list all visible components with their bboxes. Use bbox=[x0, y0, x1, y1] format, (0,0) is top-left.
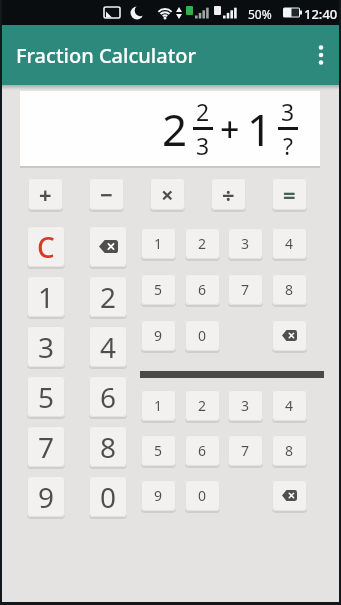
staticText: × bbox=[161, 179, 174, 209]
button[interactable]: 4 bbox=[272, 228, 307, 259]
staticText: 7 bbox=[38, 428, 55, 466]
staticText: = bbox=[283, 179, 296, 209]
button[interactable]: 8 bbox=[89, 426, 127, 467]
staticText: + bbox=[39, 179, 52, 209]
staticText: 5 bbox=[38, 378, 55, 416]
button[interactable]: 0 bbox=[89, 476, 127, 517]
staticText: Fraction Calculator bbox=[16, 42, 196, 69]
button[interactable]: 3 bbox=[228, 390, 263, 421]
button[interactable]: + bbox=[28, 178, 63, 210]
button[interactable]: 5 bbox=[141, 435, 176, 466]
button[interactable]: 9 bbox=[141, 480, 176, 511]
staticText: 4 bbox=[285, 396, 294, 415]
staticText: 5 bbox=[154, 280, 163, 299]
button[interactable]: 6 bbox=[185, 274, 220, 305]
button[interactable]: 9 bbox=[27, 476, 65, 517]
staticText: + bbox=[220, 106, 240, 152]
staticText: 8 bbox=[100, 428, 117, 466]
staticText: 5 bbox=[154, 441, 163, 460]
staticText: 3 bbox=[196, 130, 210, 161]
staticText: 6 bbox=[100, 378, 117, 416]
button[interactable] bbox=[89, 226, 127, 267]
button[interactable]: 3 bbox=[228, 228, 263, 259]
staticText: 3 bbox=[241, 234, 250, 253]
staticText: 7 bbox=[241, 441, 250, 460]
button[interactable]: ÷ bbox=[211, 178, 246, 210]
button[interactable]: 1 bbox=[141, 228, 176, 259]
staticText: 1 bbox=[38, 278, 55, 316]
button[interactable]: 5 bbox=[141, 274, 176, 305]
staticText: − bbox=[100, 179, 113, 209]
staticText: 12:40 bbox=[304, 5, 338, 23]
staticText: 4 bbox=[100, 328, 117, 366]
button[interactable]: 7 bbox=[228, 274, 263, 305]
staticText: 6 bbox=[198, 441, 207, 460]
button[interactable]: 2 bbox=[185, 228, 220, 259]
staticText: 8 bbox=[285, 441, 294, 460]
button[interactable]: 0 bbox=[185, 480, 220, 511]
button[interactable]: − bbox=[89, 178, 124, 210]
staticText: 1 bbox=[154, 396, 163, 415]
button[interactable]: 9 bbox=[141, 320, 176, 351]
button[interactable]: 6 bbox=[185, 435, 220, 466]
staticText: 0 bbox=[198, 486, 207, 505]
button[interactable]: 7 bbox=[228, 435, 263, 466]
staticText: 3 bbox=[38, 328, 55, 366]
staticText: 50% bbox=[248, 6, 272, 22]
button[interactable]: 3 bbox=[27, 326, 65, 367]
button[interactable]: × bbox=[150, 178, 185, 210]
staticText: C bbox=[37, 228, 55, 266]
button[interactable]: 1 bbox=[141, 390, 176, 421]
button[interactable]: 2 bbox=[185, 390, 220, 421]
staticText: 8 bbox=[285, 280, 294, 299]
button[interactable] bbox=[272, 480, 307, 511]
staticText: 2 bbox=[196, 96, 210, 127]
button[interactable] bbox=[301, 31, 341, 79]
staticText: 4 bbox=[285, 234, 294, 253]
staticText: 9 bbox=[38, 478, 55, 516]
button[interactable]: 8 bbox=[272, 274, 307, 305]
button[interactable]: 4 bbox=[89, 326, 127, 367]
staticText: 2 bbox=[198, 234, 207, 253]
staticText: 6 bbox=[198, 280, 207, 299]
staticText: ÷ bbox=[222, 179, 235, 209]
button[interactable] bbox=[272, 320, 307, 351]
staticText: 1 bbox=[154, 234, 163, 253]
staticText: 9 bbox=[154, 486, 163, 505]
button[interactable]: 2 bbox=[89, 276, 127, 317]
button[interactable]: 1 bbox=[27, 276, 65, 317]
button[interactable]: 7 bbox=[27, 426, 65, 467]
staticText: 0 bbox=[198, 326, 207, 345]
button[interactable]: 4 bbox=[272, 390, 307, 421]
button[interactable]: = bbox=[272, 178, 307, 210]
staticText: 3 bbox=[241, 396, 250, 415]
staticText: 1 bbox=[247, 99, 273, 159]
staticText: ? bbox=[283, 130, 293, 161]
staticText: 2 bbox=[100, 278, 117, 316]
staticText: 2 bbox=[198, 396, 207, 415]
staticText: 0 bbox=[100, 478, 117, 516]
staticText: 3 bbox=[281, 96, 295, 127]
button[interactable]: 5 bbox=[27, 376, 65, 417]
button[interactable]: C bbox=[27, 226, 65, 267]
button[interactable]: 8 bbox=[272, 435, 307, 466]
button[interactable]: 0 bbox=[185, 320, 220, 351]
staticText: 7 bbox=[241, 280, 250, 299]
button[interactable]: 6 bbox=[89, 376, 127, 417]
staticText: 2 bbox=[162, 99, 188, 159]
staticText: 9 bbox=[154, 326, 163, 345]
